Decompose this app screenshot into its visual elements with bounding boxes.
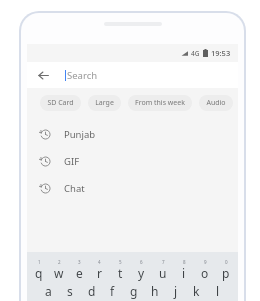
button[interactable]: s [59, 283, 81, 301]
button[interactable]: Audio [199, 95, 233, 111]
button[interactable]: SD Card [40, 95, 81, 111]
staticText: y [138, 265, 145, 281]
staticText: s [67, 283, 73, 299]
staticText: t [118, 265, 123, 281]
staticText: g [130, 283, 138, 299]
staticText: 5 [119, 259, 122, 265]
staticText: 3 [78, 259, 81, 265]
staticText: 2 [58, 259, 61, 265]
staticText: d [88, 283, 96, 299]
staticText: 19:53 [211, 48, 231, 58]
button[interactable]: 2 [49, 259, 69, 281]
button[interactable]: d [81, 283, 102, 301]
staticText: 0 [225, 259, 228, 265]
staticText: 8 [183, 259, 186, 265]
button[interactable]: 3 [69, 259, 89, 281]
staticText: l [216, 283, 220, 299]
button[interactable]: g [123, 283, 144, 301]
staticText: 6 [140, 259, 143, 265]
staticText: q [35, 265, 43, 281]
staticText: GIF [64, 155, 80, 168]
staticText: i [182, 265, 186, 281]
button[interactable]: 9 [194, 259, 215, 281]
staticText: k [193, 283, 200, 299]
staticText: 9 [204, 259, 207, 265]
staticText: 4G [191, 49, 200, 58]
button[interactable]: 4 [89, 259, 110, 281]
button[interactable]: a [37, 283, 59, 301]
staticText: o [201, 265, 209, 281]
button[interactable]: 5 [110, 259, 131, 281]
button[interactable]: Back [33, 65, 53, 85]
staticText: w [54, 265, 64, 281]
button[interactable]: 0 [215, 259, 236, 281]
staticText: j [174, 283, 178, 299]
button[interactable]: From this week [128, 95, 192, 111]
button[interactable]: Chat [27, 175, 238, 202]
button[interactable]: GIF [27, 148, 238, 175]
button[interactable]: 7 [152, 259, 173, 281]
staticText: p [222, 265, 230, 281]
staticText: r [97, 265, 102, 281]
staticText: Punjab [64, 128, 96, 141]
button[interactable]: Large [88, 95, 121, 111]
staticText: e [76, 265, 83, 281]
button[interactable]: 6 [131, 259, 152, 281]
staticText: From this week [135, 98, 185, 108]
button[interactable]: k [186, 283, 207, 301]
staticText: 1 [38, 259, 41, 265]
staticText: Chat [64, 182, 85, 195]
button[interactable]: l [207, 283, 228, 301]
staticText: Search [67, 69, 98, 82]
button[interactable]: j [165, 283, 186, 301]
staticText: 4 [98, 259, 101, 265]
staticText: SD Card [47, 98, 74, 108]
staticText: u [159, 265, 167, 281]
button[interactable]: h [144, 283, 165, 301]
button[interactable]: 8 [173, 259, 194, 281]
button[interactable]: 1 [29, 259, 49, 281]
button[interactable]: f [102, 283, 123, 301]
staticText: Audio [206, 98, 226, 108]
staticText: h [151, 283, 159, 299]
staticText: f [110, 283, 115, 299]
staticText: 7 [162, 259, 165, 265]
button[interactable]: Punjab [27, 121, 238, 148]
staticText: a [45, 283, 52, 299]
staticText: Large [95, 98, 114, 108]
